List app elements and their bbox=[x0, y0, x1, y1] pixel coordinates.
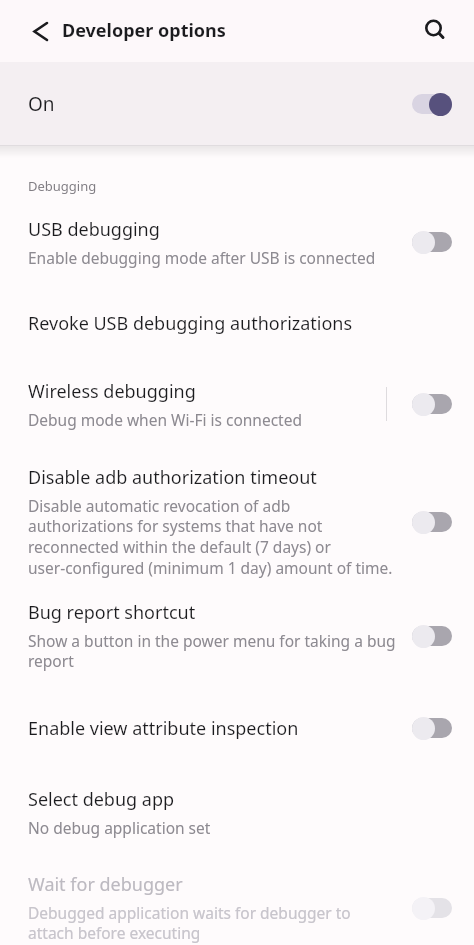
staticText: USB debugging bbox=[28, 217, 160, 242]
staticText: Select debug app bbox=[28, 787, 175, 812]
staticText: Developer options bbox=[62, 18, 226, 43]
staticText: Wireless debugging bbox=[28, 379, 196, 404]
button[interactable] bbox=[24, 15, 56, 47]
staticText: No debug application set bbox=[28, 817, 211, 838]
staticText: Revoke USB debugging authorizations bbox=[28, 311, 353, 336]
button[interactable]: Select debug app bbox=[0, 776, 474, 848]
staticText: Debugged application waits for debugger … bbox=[28, 902, 351, 944]
button[interactable]: Disable adb authorization timeout bbox=[0, 456, 474, 588]
staticText: Enable view attribute inspection bbox=[28, 716, 299, 741]
staticText: Disable automatic revocation of adb auth… bbox=[28, 495, 393, 579]
button[interactable] bbox=[418, 15, 450, 47]
button[interactable]: Wait for debugger bbox=[0, 861, 474, 945]
staticText: Show a button in the power menu for taki… bbox=[28, 630, 396, 672]
staticText: Debug mode when Wi-Fi is connected bbox=[28, 409, 302, 430]
staticText: Debugging bbox=[28, 177, 97, 195]
staticText: Wait for debugger bbox=[28, 872, 183, 897]
staticText: Bug report shortcut bbox=[28, 600, 196, 625]
button[interactable]: Bug report shortcut bbox=[0, 584, 474, 688]
button[interactable]: USB debugging bbox=[0, 206, 474, 278]
staticText: On bbox=[28, 91, 55, 117]
staticText: Disable adb authorization timeout bbox=[28, 465, 317, 490]
button[interactable]: Revoke USB debugging authorizations bbox=[0, 291, 474, 355]
button[interactable]: Wireless debugging bbox=[0, 366, 474, 442]
button[interactable]: On bbox=[0, 62, 474, 146]
staticText: Enable debugging mode after USB is conne… bbox=[28, 247, 376, 268]
button[interactable]: Enable view attribute inspection bbox=[0, 696, 474, 760]
